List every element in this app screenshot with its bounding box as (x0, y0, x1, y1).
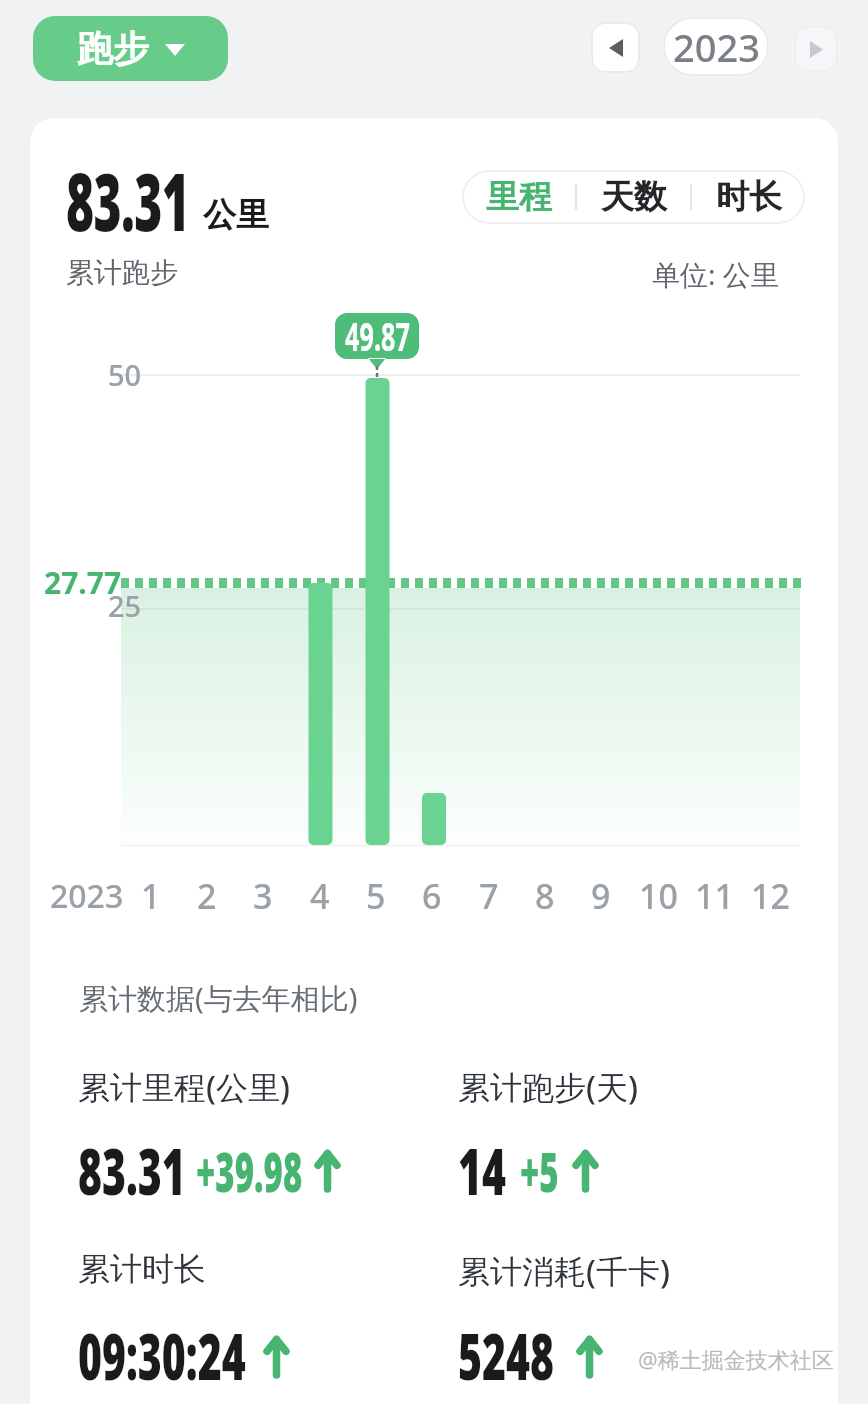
staticText: 4 (310, 873, 330, 919)
staticText: 累计里程(公里) (78, 1065, 290, 1109)
staticText: 累计消耗(千卡) (458, 1249, 670, 1293)
staticText: 8 (535, 873, 555, 919)
staticText: 单位: 公里 (652, 255, 779, 293)
staticText: 5248 (458, 1313, 554, 1399)
button[interactable]: 天数 (577, 170, 690, 224)
staticText: 跑步 (77, 26, 149, 71)
staticText: 2023 (50, 874, 124, 918)
staticText: 累计时长 (78, 1249, 206, 1289)
staticText: 09:30:24 (78, 1313, 246, 1399)
staticText: 9 (591, 873, 611, 919)
staticText: 83.31 (78, 1128, 186, 1214)
staticText: 时长 (716, 176, 782, 218)
staticText: 7 (479, 873, 499, 919)
staticText: 27.77 (44, 562, 122, 603)
staticText: 49.87 (345, 308, 410, 362)
staticText: 10 (639, 873, 678, 919)
staticText: 累计数据(与去年相比) (79, 978, 358, 1018)
staticText: 25 (108, 586, 142, 625)
staticText: 天数 (601, 176, 667, 218)
button[interactable] (591, 22, 640, 73)
button[interactable]: 跑步 (33, 16, 228, 81)
staticText: 5 (366, 873, 386, 919)
staticText: 11 (695, 873, 734, 919)
staticText: 1 (141, 873, 161, 919)
button[interactable]: 2023 (663, 17, 769, 76)
staticText: @稀土掘金技术社区 (638, 1344, 834, 1374)
staticText: 里程 (486, 176, 552, 218)
staticText: 累计跑步(天) (458, 1065, 638, 1109)
staticText: 3 (253, 873, 273, 919)
staticText: +39.98 (196, 1133, 303, 1208)
staticText: 累计跑步 (66, 255, 178, 290)
button[interactable]: 时长 (692, 170, 805, 224)
staticText: 公里 (203, 194, 269, 236)
staticText: 14 (458, 1128, 506, 1214)
staticText: +5 (520, 1133, 559, 1208)
staticText: 12 (751, 873, 790, 919)
staticText: 6 (422, 873, 442, 919)
staticText: 83.31 (66, 145, 190, 254)
staticText: 2 (197, 873, 217, 919)
staticText: 2023 (673, 21, 760, 73)
staticText: 50 (108, 355, 142, 394)
button[interactable]: 里程 (462, 170, 575, 224)
button[interactable] (794, 26, 838, 72)
